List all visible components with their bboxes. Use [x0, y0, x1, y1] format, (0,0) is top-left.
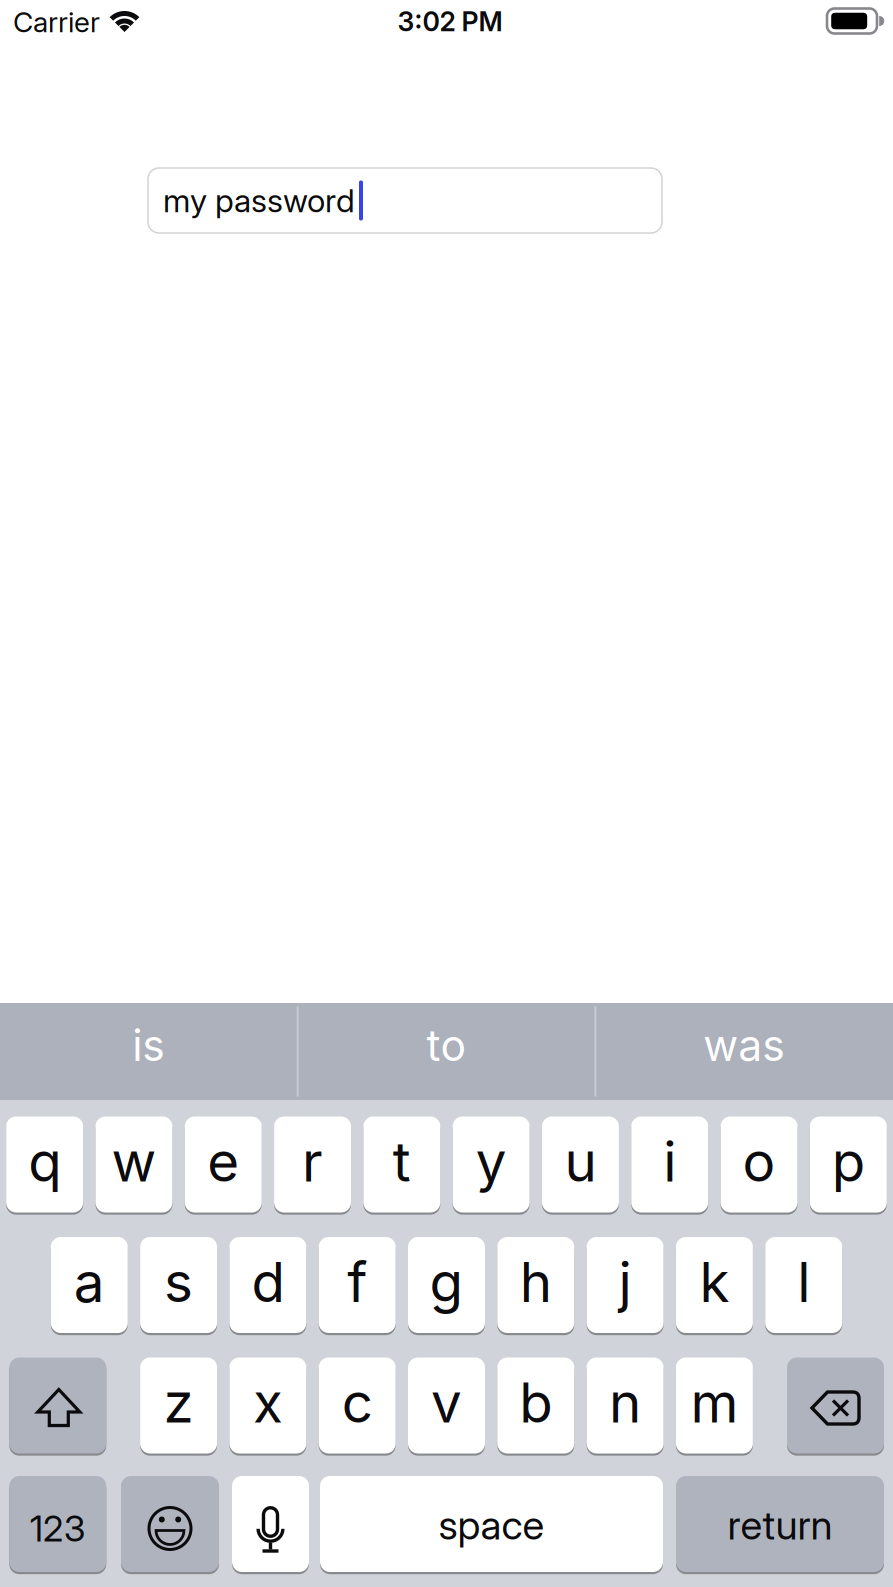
- button[interactable]: v: [408, 1356, 485, 1455]
- button[interactable]: u: [542, 1115, 619, 1214]
- staticText: 123: [30, 1507, 86, 1550]
- staticText: l: [797, 1250, 810, 1314]
- button[interactable]: k: [676, 1235, 753, 1334]
- staticText: 3:02 PM: [397, 6, 502, 37]
- button[interactable]: o: [720, 1115, 797, 1214]
- staticText: x: [253, 1370, 283, 1435]
- button[interactable]: q: [6, 1115, 83, 1214]
- button[interactable]: t: [363, 1115, 440, 1214]
- staticText: was: [703, 1020, 785, 1071]
- button[interactable]: Delete: [787, 1356, 884, 1455]
- button[interactable]: e: [185, 1115, 262, 1214]
- staticText: s: [164, 1250, 193, 1314]
- button[interactable]: Shift: [9, 1356, 106, 1455]
- button[interactable]: m: [676, 1356, 753, 1455]
- staticText: m: [690, 1370, 738, 1435]
- staticText: is: [132, 1020, 165, 1071]
- staticText: y: [476, 1129, 507, 1194]
- button[interactable]: was: [597, 1003, 891, 1100]
- button[interactable]: s: [140, 1235, 217, 1334]
- button[interactable]: return: [676, 1474, 884, 1573]
- staticText: g: [429, 1250, 463, 1314]
- staticText: e: [207, 1129, 239, 1194]
- button[interactable]: to: [300, 1003, 593, 1100]
- button[interactable]: l: [765, 1235, 842, 1334]
- button[interactable]: b: [497, 1356, 574, 1455]
- button[interactable]: Password text field: [148, 168, 662, 233]
- button[interactable]: d: [229, 1235, 306, 1334]
- staticText: v: [431, 1370, 462, 1435]
- button[interactable]: f: [319, 1235, 396, 1334]
- button[interactable]: r: [274, 1115, 351, 1214]
- staticText: d: [251, 1250, 284, 1314]
- staticText: w: [111, 1129, 156, 1194]
- staticText: c: [342, 1370, 373, 1435]
- staticText: a: [74, 1250, 105, 1314]
- button[interactable]: c: [319, 1356, 396, 1455]
- button[interactable]: 123: [9, 1474, 106, 1573]
- staticText: z: [164, 1370, 194, 1435]
- staticText: h: [520, 1250, 552, 1314]
- staticText: my password: [163, 182, 355, 219]
- staticText: p: [832, 1129, 865, 1194]
- button[interactable]: Dictate: [232, 1474, 309, 1573]
- staticText: u: [564, 1129, 596, 1194]
- staticText: b: [519, 1370, 552, 1435]
- button[interactable]: h: [497, 1235, 574, 1334]
- button[interactable]: x: [229, 1356, 306, 1455]
- staticText: j: [619, 1250, 632, 1314]
- staticText: to: [426, 1020, 466, 1071]
- button[interactable]: a: [51, 1235, 128, 1334]
- button[interactable]: g: [408, 1235, 485, 1334]
- staticText: q: [28, 1129, 61, 1194]
- button[interactable]: p: [810, 1115, 887, 1214]
- staticText: n: [609, 1370, 641, 1435]
- button[interactable]: j: [587, 1235, 664, 1334]
- button[interactable]: i: [631, 1115, 708, 1214]
- staticText: o: [742, 1129, 775, 1194]
- staticText: f: [347, 1250, 367, 1314]
- staticText: return: [727, 1501, 832, 1549]
- staticText: i: [663, 1129, 676, 1194]
- staticText: Carrier: [13, 5, 100, 38]
- button[interactable]: is: [2, 1003, 296, 1100]
- staticText: k: [699, 1250, 729, 1314]
- button[interactable]: y: [453, 1115, 530, 1214]
- button[interactable]: z: [140, 1356, 217, 1455]
- button[interactable]: w: [95, 1115, 172, 1214]
- button[interactable]: n: [587, 1356, 664, 1455]
- button[interactable]: space: [320, 1474, 663, 1573]
- staticText: r: [302, 1129, 323, 1194]
- staticText: space: [438, 1501, 544, 1549]
- button[interactable]: Emoji: [121, 1474, 219, 1573]
- staticText: t: [393, 1129, 411, 1194]
